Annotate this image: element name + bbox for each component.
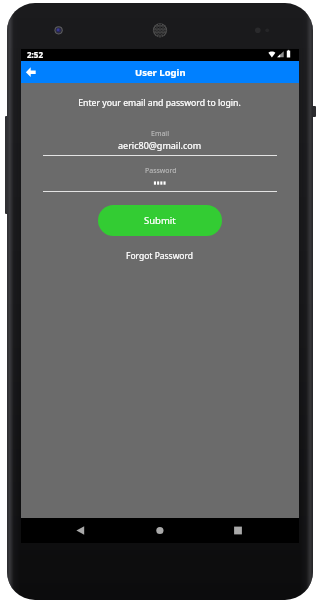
staticText: Forgot Password xyxy=(126,250,194,262)
staticText: Password xyxy=(145,166,177,176)
button[interactable]: Recent apps xyxy=(218,518,258,543)
button[interactable]: Forgot Password xyxy=(122,248,198,264)
staticText: 2:52 xyxy=(27,49,43,60)
button[interactable]: Navigate up xyxy=(21,61,43,83)
button[interactable]: Back xyxy=(60,518,100,543)
staticText: Email xyxy=(151,129,169,139)
staticText: Enter your email and password to login. xyxy=(78,97,241,109)
staticText: aeric80@gmail.com xyxy=(118,139,202,151)
staticText: Submit xyxy=(144,214,176,227)
button[interactable]: Submit xyxy=(98,205,222,236)
staticText: User Login xyxy=(135,66,186,79)
button[interactable]: Home xyxy=(140,518,180,543)
